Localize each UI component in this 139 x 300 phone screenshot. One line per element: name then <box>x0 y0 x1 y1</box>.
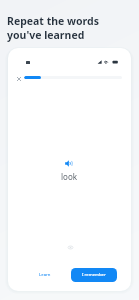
button[interactable]: I remember <box>71 268 117 282</box>
button[interactable]: Learn <box>37 267 52 282</box>
button[interactable]: Show hint <box>64 241 76 253</box>
staticText: you've learned <box>7 28 85 42</box>
button[interactable]: Close <box>13 73 24 84</box>
staticText: Learn <box>39 272 51 278</box>
staticText: look <box>61 171 78 182</box>
button[interactable]: Play pronunciation <box>63 158 74 169</box>
staticText: Repeat the words <box>7 14 99 28</box>
staticText: I remember <box>82 272 106 278</box>
